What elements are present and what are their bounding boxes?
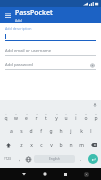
staticText: y <box>55 115 58 122</box>
button[interactable]: Switch keyboard <box>76 168 97 180</box>
button[interactable]: x <box>26 138 36 152</box>
staticText: k <box>80 128 83 135</box>
button[interactable]: 0 <box>91 110 101 124</box>
button[interactable]: j <box>66 124 76 138</box>
staticText: 7 <box>65 112 67 115</box>
staticText: PassPocket <box>15 8 53 18</box>
button[interactable]: 3 <box>21 110 31 124</box>
button[interactable]: 5 <box>41 110 51 124</box>
staticText: , <box>19 156 21 162</box>
staticText: w <box>14 115 18 122</box>
button[interactable]: Change keyboard language <box>24 152 33 166</box>
button[interactable]: a <box>6 124 16 138</box>
button[interactable]: k <box>76 124 86 138</box>
staticText: Add <box>15 18 22 23</box>
button[interactable]: Open navigation menu <box>3 11 12 20</box>
staticText: o <box>84 115 88 122</box>
staticText: English <box>49 157 60 161</box>
button[interactable]: Home <box>34 168 55 180</box>
button[interactable]: b <box>56 138 66 152</box>
button[interactable]: ?123 <box>0 152 15 166</box>
button[interactable]: z <box>16 138 26 152</box>
staticText: . <box>80 156 82 162</box>
staticText: 9 <box>85 112 87 115</box>
staticText: i <box>75 115 77 122</box>
staticText: b <box>59 142 63 149</box>
button[interactable]: m <box>76 138 86 152</box>
button[interactable]: . <box>76 152 85 166</box>
staticText: p <box>94 115 98 122</box>
staticText: 2 <box>15 112 17 115</box>
button[interactable]: n <box>66 138 76 152</box>
staticText: 6 <box>56 112 58 115</box>
staticText: c <box>40 142 43 149</box>
staticText: 5 <box>45 112 47 115</box>
button[interactable]: l <box>86 124 96 138</box>
staticText: s <box>20 128 23 135</box>
staticText: v <box>50 142 53 149</box>
button[interactable]: Enter <box>85 152 101 166</box>
button[interactable]: f <box>36 124 46 138</box>
staticText: q <box>4 115 8 122</box>
button[interactable]: h <box>56 124 66 138</box>
staticText: 0 <box>95 112 97 115</box>
staticText: t <box>45 115 47 122</box>
staticText: 8 <box>75 112 77 115</box>
button[interactable]: Voice input <box>91 101 98 108</box>
button[interactable]: , <box>15 152 24 166</box>
button[interactable]: 4 <box>31 110 41 124</box>
staticText: a <box>10 128 13 135</box>
staticText: r <box>35 115 38 122</box>
button[interactable]: 7 <box>61 110 71 124</box>
button[interactable]: s <box>16 124 26 138</box>
button[interactable]: v <box>46 138 56 152</box>
staticText: e <box>25 115 28 122</box>
button[interactable]: 9 <box>81 110 91 124</box>
staticText: h <box>59 128 63 135</box>
staticText: 4 <box>36 112 38 115</box>
button[interactable]: Shift <box>0 138 16 152</box>
button[interactable]: Add password <box>5 61 96 70</box>
button[interactable]: Back <box>13 168 34 180</box>
staticText: Add description <box>5 26 32 31</box>
button[interactable]: Add email or username <box>5 47 96 56</box>
staticText: x <box>30 142 33 149</box>
staticText: j <box>70 128 72 135</box>
staticText: 1 <box>5 112 7 115</box>
button[interactable]: c <box>36 138 46 152</box>
staticText: u <box>64 115 68 122</box>
button[interactable]: 2 <box>11 110 21 124</box>
staticText: z <box>20 142 23 149</box>
staticText: Add email or username <box>5 48 96 54</box>
staticText: 3 <box>26 112 28 115</box>
staticText: m <box>79 142 84 149</box>
button[interactable]: d <box>26 124 36 138</box>
staticText: ?123 <box>4 157 11 161</box>
button[interactable]: Recent apps <box>55 168 76 180</box>
button[interactable]: g <box>46 124 56 138</box>
staticText: n <box>69 142 73 149</box>
button[interactable]: English <box>34 155 75 163</box>
staticText: d <box>29 128 33 135</box>
staticText: g <box>49 128 53 135</box>
button[interactable]: 1 <box>0 110 11 124</box>
staticText: Add password <box>5 62 89 68</box>
button[interactable]: 6 <box>51 110 61 124</box>
button[interactable]: Backspace <box>86 138 101 152</box>
button[interactable]: 8 <box>71 110 81 124</box>
staticText: f <box>40 128 42 135</box>
button[interactable]: Add description <box>5 26 96 41</box>
button[interactable]: Toggle password visibility <box>89 62 96 69</box>
staticText: l <box>90 128 92 135</box>
button[interactable] <box>67 100 101 109</box>
